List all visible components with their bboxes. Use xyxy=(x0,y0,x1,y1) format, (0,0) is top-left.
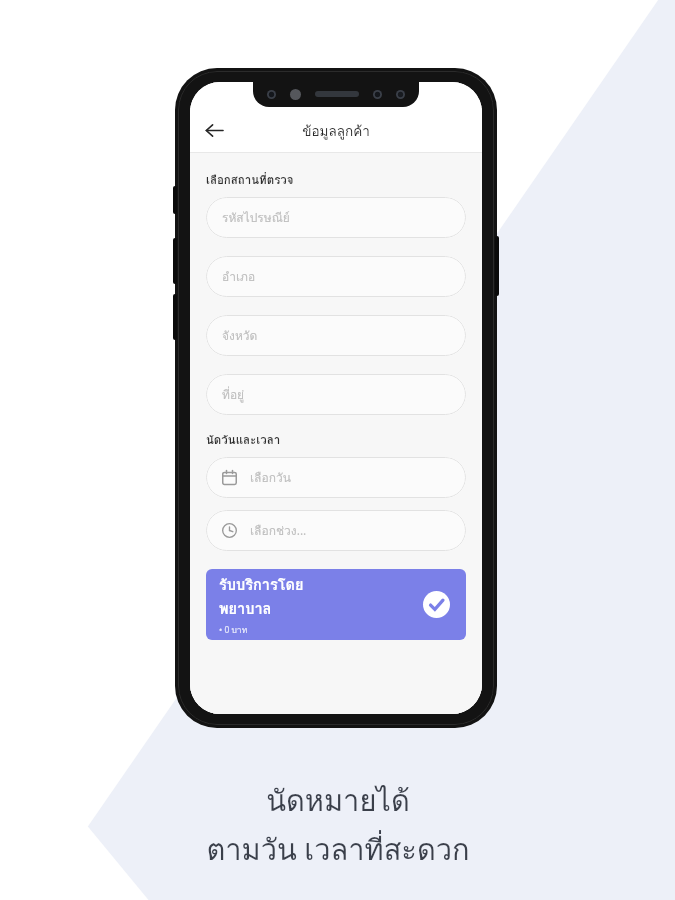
button[interactable]: เลือกวัน xyxy=(206,457,466,498)
button[interactable]: จังหวัด xyxy=(206,315,466,356)
staticText: เลือกวัน xyxy=(250,468,291,487)
staticText: เลือกช่วง... xyxy=(250,521,307,540)
staticText: รับบริการโดย xyxy=(219,573,304,596)
button[interactable]: อำเภอ xyxy=(206,256,466,297)
staticText: ตามวัน เวลาที่สะดวก xyxy=(206,827,470,873)
staticText: นัดหมายได้ xyxy=(266,778,410,824)
staticText: รหัสไปรษณีย์ xyxy=(222,208,290,227)
staticText: จังหวัด xyxy=(222,326,258,345)
staticText: นัดวันและเวลา xyxy=(206,431,281,449)
staticText: อำเภอ xyxy=(222,267,256,286)
staticText: ข้อมูลลูกค้า xyxy=(302,120,370,141)
staticText: เลือกสถานที่ตรวจ xyxy=(206,171,294,189)
button[interactable]: เลือกช่วง... xyxy=(206,510,466,551)
button[interactable]: รับบริการโดย xyxy=(206,569,466,640)
staticText: ที่อยู่ xyxy=(222,385,245,404)
button[interactable]: ที่อยู่ xyxy=(206,374,466,415)
button[interactable]: Back xyxy=(196,112,232,148)
staticText: • 0 บาท xyxy=(219,623,248,637)
button[interactable]: รหัสไปรษณีย์ xyxy=(206,197,466,238)
staticText: พยาบาล xyxy=(219,597,272,620)
